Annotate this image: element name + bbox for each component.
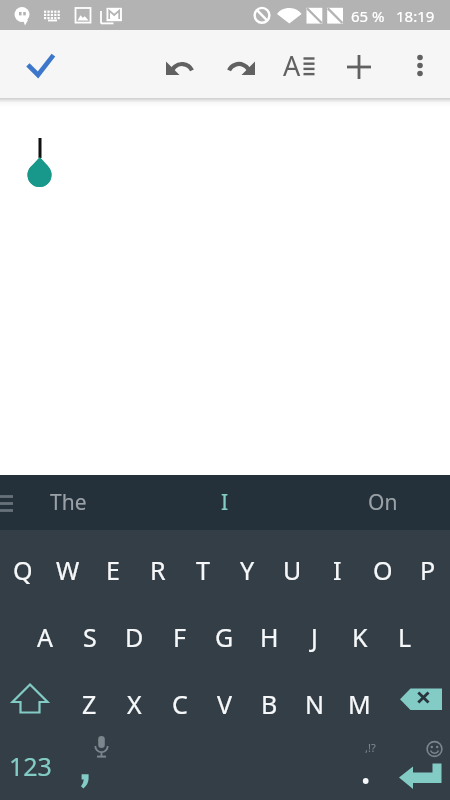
button[interactable] xyxy=(157,42,205,90)
button[interactable]: M xyxy=(337,664,382,731)
staticText: The xyxy=(50,488,87,517)
button[interactable]: F xyxy=(157,597,202,664)
button[interactable] xyxy=(0,664,67,732)
staticText: N xyxy=(305,687,325,721)
button[interactable]: The xyxy=(13,475,123,530)
staticText: Q xyxy=(13,553,33,587)
button[interactable]: Y xyxy=(225,530,270,597)
button[interactable]: O xyxy=(360,530,405,597)
button[interactable]: H xyxy=(247,597,292,664)
button[interactable]: ,!? xyxy=(337,732,382,800)
button[interactable] xyxy=(216,42,264,90)
staticText: X xyxy=(127,687,142,721)
button[interactable]: J xyxy=(292,597,337,664)
staticText: A xyxy=(283,47,301,84)
button[interactable]: A xyxy=(22,597,67,664)
button[interactable]: I xyxy=(315,530,360,597)
staticText: E xyxy=(106,553,120,587)
staticText: S xyxy=(83,620,97,654)
staticText: On xyxy=(368,488,398,517)
button[interactable]: V xyxy=(202,664,247,731)
staticText: 123 xyxy=(9,749,52,783)
button[interactable]: B xyxy=(247,664,292,731)
staticText: H xyxy=(260,620,279,654)
staticText: D xyxy=(125,620,144,654)
staticText: K xyxy=(352,620,368,654)
staticText: U xyxy=(283,553,302,587)
staticText: 18:19 xyxy=(396,6,435,26)
button[interactable]: P xyxy=(405,530,450,597)
button[interactable] xyxy=(67,732,112,800)
button[interactable]: Z xyxy=(67,664,112,731)
button[interactable]: E xyxy=(90,530,135,597)
staticText: I xyxy=(333,553,342,587)
staticText: F xyxy=(173,620,186,654)
button[interactable]: Q xyxy=(0,530,45,597)
staticText: V xyxy=(217,687,233,721)
button[interactable]: D xyxy=(112,597,157,664)
button[interactable] xyxy=(396,42,444,90)
staticText: C xyxy=(172,687,188,721)
staticText: A xyxy=(37,620,53,654)
staticText: W xyxy=(56,553,80,587)
staticText: Z xyxy=(82,687,97,721)
staticText: Y xyxy=(240,553,255,587)
button[interactable]: C xyxy=(157,664,202,731)
staticText: M xyxy=(348,687,371,721)
button[interactable] xyxy=(335,42,383,90)
button[interactable]: X xyxy=(112,664,157,731)
staticText: 65 % xyxy=(351,6,385,26)
staticText: I xyxy=(221,488,229,517)
staticText: R xyxy=(150,553,166,587)
button[interactable]: U xyxy=(270,530,315,597)
staticText: P xyxy=(420,553,436,587)
staticText: L xyxy=(398,620,412,654)
button[interactable]: G xyxy=(202,597,247,664)
staticText: T xyxy=(196,553,210,587)
staticText: G xyxy=(215,620,234,654)
button[interactable] xyxy=(16,40,64,88)
staticText: J xyxy=(311,620,318,654)
button[interactable]: L xyxy=(382,597,427,664)
staticText: B xyxy=(261,687,278,721)
button[interactable] xyxy=(382,732,450,800)
button[interactable]: W xyxy=(45,530,90,597)
staticText: O xyxy=(373,553,393,587)
button[interactable]: A xyxy=(277,42,325,90)
button[interactable]: K xyxy=(337,597,382,664)
button[interactable]: N xyxy=(292,664,337,731)
button[interactable]: On xyxy=(328,475,438,530)
button[interactable]: T xyxy=(180,530,225,597)
button[interactable]: R xyxy=(135,530,180,597)
button[interactable]: S xyxy=(67,597,112,664)
button[interactable]: I xyxy=(170,475,280,530)
button[interactable]: 123 xyxy=(0,732,67,800)
button[interactable] xyxy=(382,664,450,732)
staticText: ,!? xyxy=(365,740,376,755)
